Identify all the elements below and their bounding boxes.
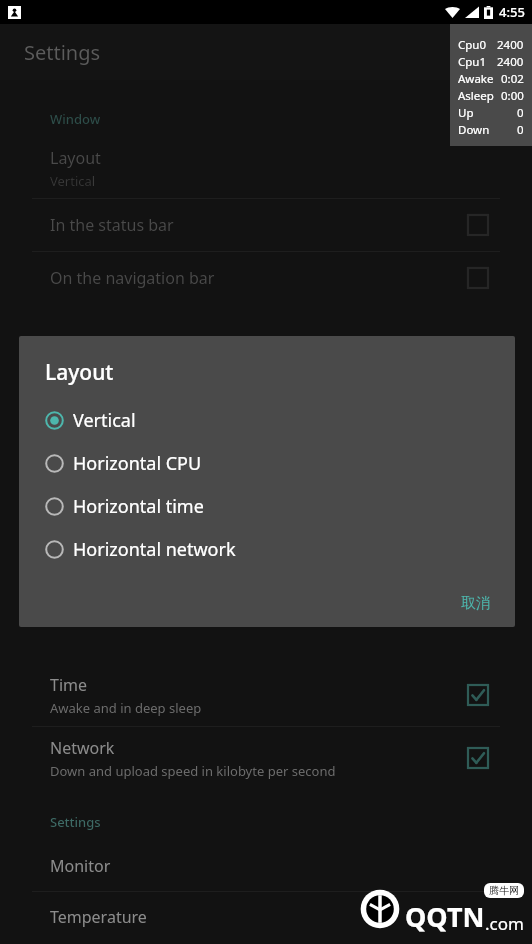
staticText: Layout <box>50 147 101 169</box>
staticText: 4:55 <box>499 3 525 21</box>
staticText: Up <box>458 105 474 121</box>
staticText: Vertical <box>50 172 96 190</box>
staticText: 腾牛网 <box>489 884 519 897</box>
staticText: Horizontal time <box>73 494 204 519</box>
staticText: Vertical <box>73 408 136 433</box>
staticText: 2400 <box>497 37 524 53</box>
staticText: 0 <box>517 122 524 138</box>
staticText: Horizontal network <box>73 537 236 562</box>
staticText: QQTN <box>405 898 485 935</box>
staticText: Monitor <box>50 855 111 877</box>
staticText: Down <box>458 122 490 138</box>
staticText: On the navigation bar <box>50 267 215 289</box>
button[interactable]: Vertical <box>19 399 515 442</box>
button[interactable]: On the navigation bar <box>0 252 532 304</box>
staticText: Down and upload speed in kilobyte per se… <box>50 762 336 780</box>
staticText: .com <box>485 912 524 935</box>
staticText: Temperature <box>50 906 147 928</box>
button[interactable]: Horizontal network <box>19 528 515 571</box>
button[interactable]: Layout <box>0 138 532 198</box>
staticText: Asleep <box>458 88 494 104</box>
staticText: 取消 <box>461 594 491 613</box>
staticText: Cpu0 <box>458 37 487 53</box>
staticText: 0:00 <box>501 88 524 104</box>
staticText: 0:02 <box>501 71 524 87</box>
button[interactable]: Monitor <box>0 841 532 891</box>
button[interactable]: In the status bar <box>0 199 532 251</box>
staticText: Settings <box>50 813 101 831</box>
staticText: Window <box>50 110 101 128</box>
button[interactable]: Network <box>0 727 532 789</box>
button[interactable]: Horizontal time <box>19 485 515 528</box>
staticText: 2400 <box>497 54 524 70</box>
staticText: Time <box>50 674 88 696</box>
button[interactable]: Horizontal CPU <box>19 442 515 485</box>
button[interactable]: 取消 <box>445 586 515 627</box>
staticText: Horizontal CPU <box>73 451 202 476</box>
staticText: Awake <box>458 71 494 87</box>
staticText: Cpu1 <box>458 54 487 70</box>
staticText: In the status bar <box>50 214 174 236</box>
staticText: Network <box>50 737 115 759</box>
button[interactable]: Temperature <box>0 892 532 942</box>
button[interactable]: Time <box>0 664 532 726</box>
staticText: Layout <box>45 358 114 387</box>
staticText: Settings <box>24 39 101 66</box>
staticText: Awake and in deep sleep <box>50 699 202 717</box>
staticText: 0 <box>517 105 524 121</box>
